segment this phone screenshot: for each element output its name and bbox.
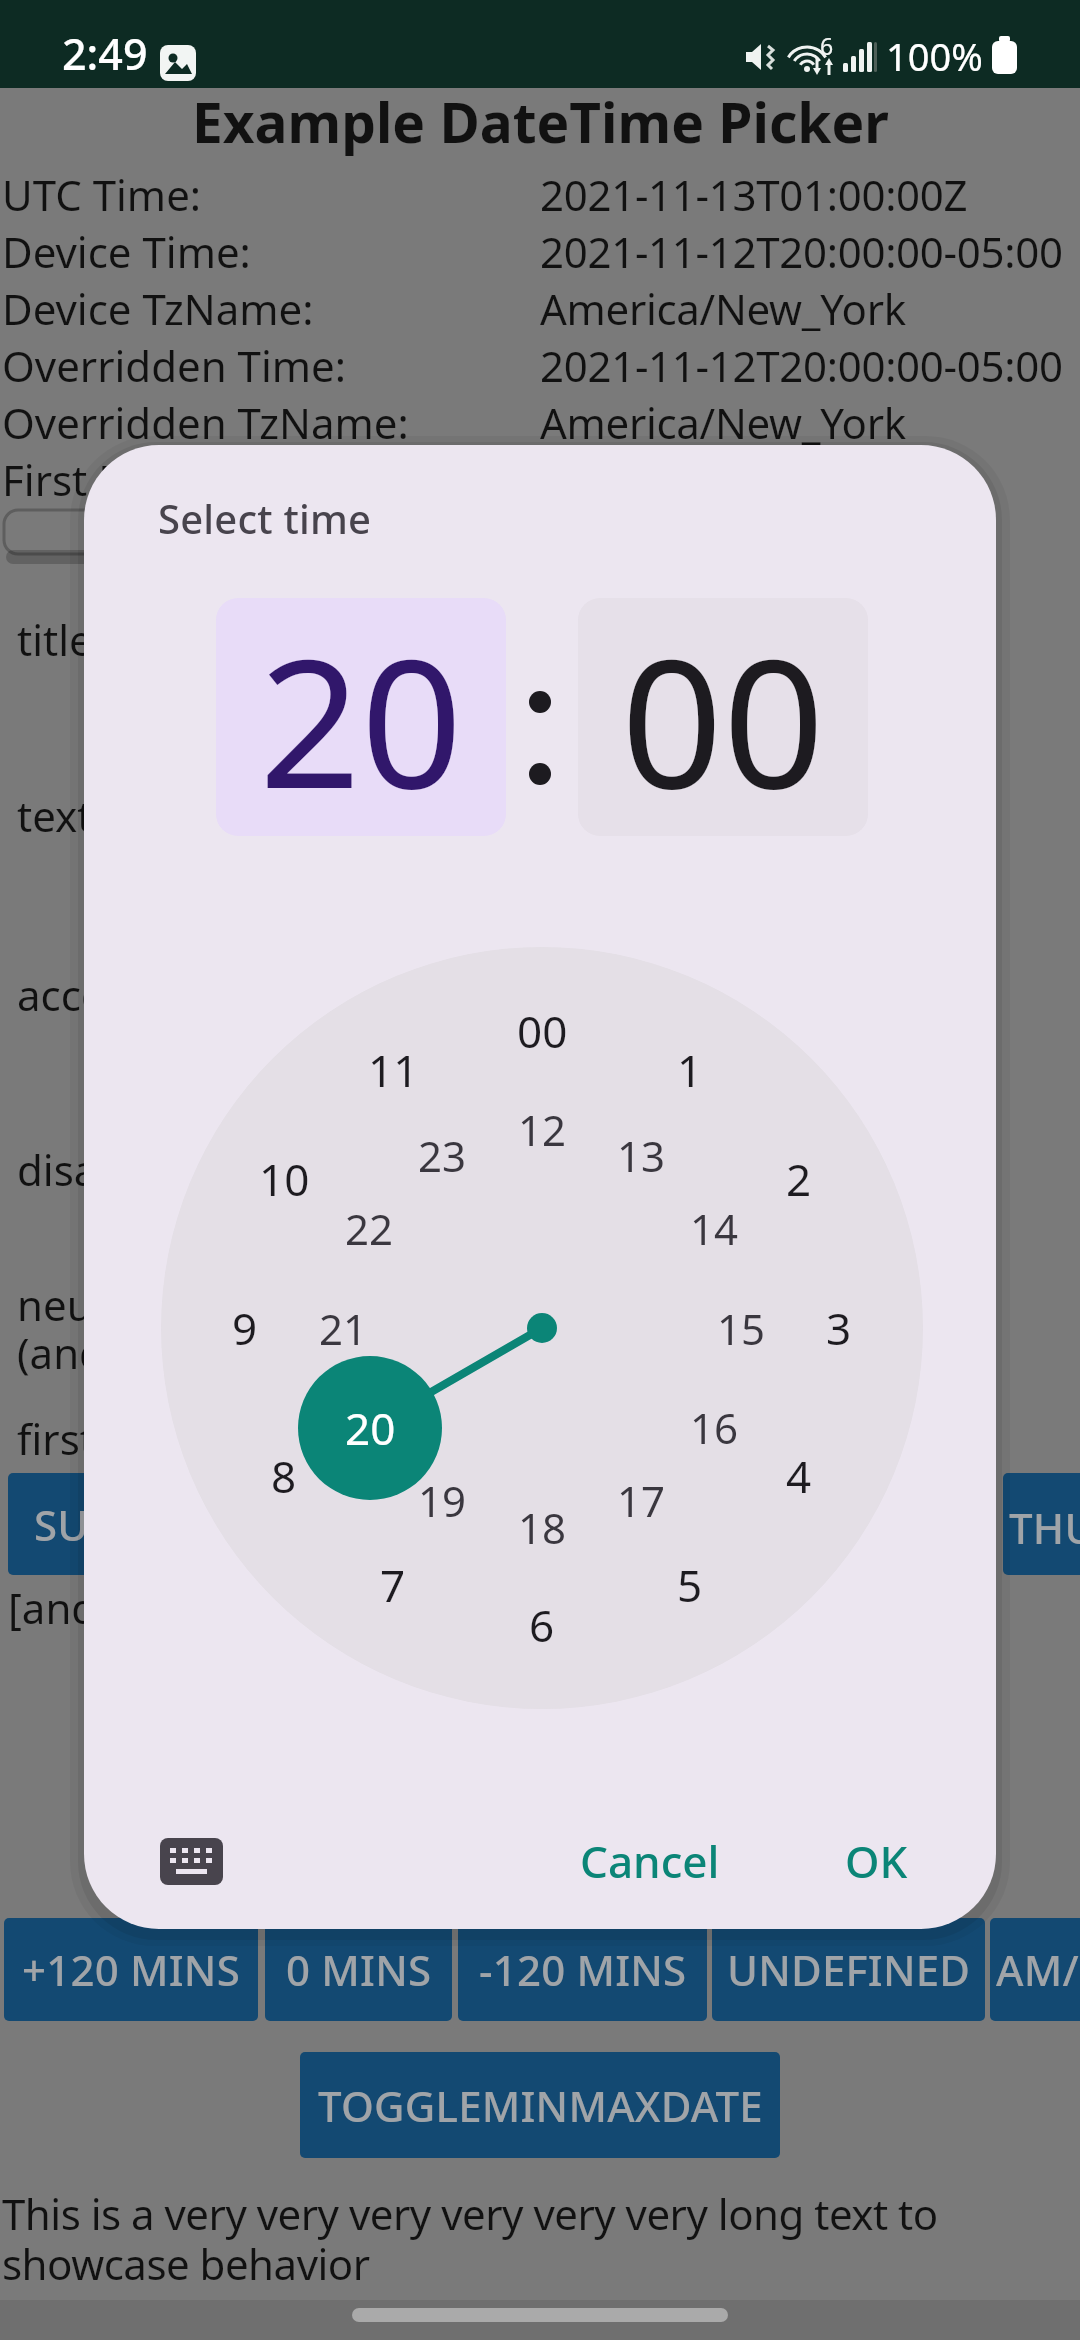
staticText: firstDay — [17, 1410, 171, 1467]
staticText: 00 — [517, 1001, 568, 1061]
button[interactable] — [160, 1838, 223, 1885]
staticText: 22 — [345, 1200, 394, 1257]
staticText: 16 — [690, 1399, 739, 1456]
staticText: SUN — [34, 1496, 122, 1553]
staticText: 5 — [677, 1555, 703, 1615]
staticText: 15 — [717, 1300, 766, 1357]
staticText: +120 MINS — [22, 1941, 240, 1998]
button[interactable]: -120 MINS — [458, 1918, 707, 2021]
staticText: neutral — [17, 1276, 159, 1333]
staticText: (android — [17, 1324, 184, 1381]
staticText: OK — [845, 1831, 908, 1891]
staticText: UTC Time: — [2, 166, 202, 223]
staticText: 20 — [345, 1398, 396, 1458]
staticText: 13 — [617, 1127, 666, 1184]
staticText: THU — [1009, 1499, 1080, 1556]
button[interactable]: OK — [786, 1821, 966, 1901]
staticText: First Day of Week: — [2, 451, 355, 508]
staticText: America/New_York — [540, 394, 906, 451]
staticText: disabled — [17, 1141, 184, 1198]
staticText: 8 — [271, 1446, 297, 1506]
staticText: 17 — [617, 1472, 666, 1529]
staticText: 1 — [677, 1040, 703, 1100]
button[interactable]: THU — [1003, 1473, 1080, 1575]
staticText: Select time — [158, 491, 372, 545]
staticText: -120 MINS — [479, 1941, 687, 1998]
staticText: 20 — [259, 598, 463, 836]
staticText: 6 — [820, 30, 834, 61]
staticText: titleIOS — [17, 611, 163, 668]
button[interactable]: +120 MINS — [4, 1918, 258, 2021]
staticText: 10 — [259, 1149, 310, 1209]
staticText: 0 MINS — [286, 1941, 432, 1998]
staticText: AM/PM — [996, 1941, 1080, 1998]
staticText: 18 — [518, 1499, 567, 1556]
staticText: Example DateTime Picker — [192, 84, 889, 159]
button[interactable]: TOGGLEMINMAXDATE — [300, 2052, 780, 2158]
staticText: 19 — [418, 1472, 467, 1529]
button[interactable]: Cancel — [530, 1821, 770, 1901]
button[interactable]: AM/PM — [990, 1918, 1080, 2021]
staticText: 00 — [621, 598, 825, 836]
staticText: 2021-11-12T20:00:00-05:00 — [540, 223, 1063, 280]
staticText: 7 — [380, 1555, 406, 1615]
staticText: 100% — [886, 30, 983, 82]
staticText: Overridden TzName: — [2, 394, 409, 451]
staticText: TOGGLEMINMAXDATE — [318, 2077, 763, 2134]
staticText: 2021-11-12T20:00:00-05:00 — [540, 337, 1063, 394]
staticText: Overridden Time: — [2, 337, 346, 394]
staticText: 3 — [826, 1298, 852, 1358]
staticText: accentIOS — [17, 966, 216, 1023]
button[interactable]: 20 — [216, 598, 506, 836]
staticText: 14 — [690, 1200, 739, 1257]
staticText: 2:49 — [62, 24, 148, 83]
button[interactable]: 0 MINS — [265, 1918, 452, 2021]
staticText: Device Time: — [2, 223, 251, 280]
staticText: UNDEFINED — [727, 1941, 971, 1998]
staticText: Cancel — [580, 1831, 720, 1891]
button[interactable]: SUN — [8, 1473, 148, 1575]
staticText: 9 — [232, 1298, 258, 1358]
staticText: 2021-11-13T01:00:00Z — [540, 166, 968, 223]
staticText: showcase behavior — [2, 2235, 370, 2292]
staticText: [android] — [8, 1579, 190, 1636]
button[interactable]: 20 — [298, 1356, 442, 1500]
staticText: Device TzName: — [2, 280, 314, 337]
staticText: 4 — [786, 1446, 812, 1506]
staticText: This is a very very very very very very … — [2, 2185, 938, 2242]
staticText: 12 — [518, 1101, 567, 1158]
staticText: 11 — [368, 1040, 419, 1100]
staticText: textIOS — [17, 787, 163, 844]
staticText: 6 — [529, 1595, 555, 1655]
button[interactable]: UNDEFINED — [712, 1918, 985, 2021]
staticText: 2 — [786, 1149, 812, 1209]
staticText: 23 — [418, 1127, 467, 1184]
staticText: America/New_York — [540, 280, 906, 337]
staticText: 21 — [319, 1300, 368, 1357]
button[interactable]: 00 — [578, 598, 868, 836]
